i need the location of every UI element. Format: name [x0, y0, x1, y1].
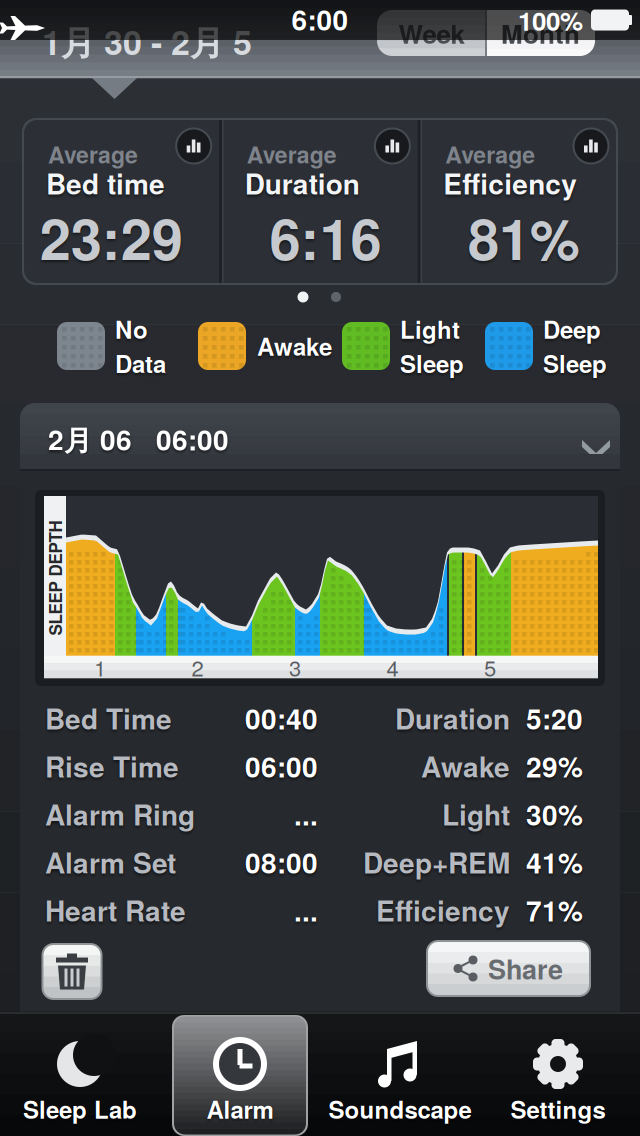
staticText: Awake: [421, 746, 510, 786]
staticText: Rise Time: [45, 746, 179, 786]
staticText: SLEEP DEPTH: [0, 566, 112, 590]
staticText: 08:00: [245, 842, 318, 882]
button[interactable]: Alarm: [165, 1017, 315, 1135]
staticText: Deep+REM: [363, 842, 510, 882]
button[interactable]: Settings: [483, 1017, 633, 1135]
staticText: 5: [484, 651, 496, 683]
staticText: 30%: [526, 794, 583, 834]
staticText: Bed Time: [45, 698, 172, 738]
staticText: 29%: [526, 746, 583, 786]
staticText: 23:29: [40, 197, 183, 277]
staticText: Heart Rate: [45, 890, 186, 930]
staticText: Awake: [257, 329, 332, 363]
staticText: Alarm: [206, 1092, 273, 1126]
staticText: ...: [294, 890, 318, 930]
staticText: 4: [386, 651, 398, 683]
staticText: No Data: [115, 312, 166, 380]
staticText: Duration: [395, 698, 510, 738]
staticText: Average: [48, 137, 138, 170]
staticText: 2: [191, 651, 203, 683]
staticText: 6:16: [269, 197, 381, 277]
button[interactable]: [572, 127, 609, 164]
staticText: 41%: [526, 842, 583, 882]
staticText: ...: [294, 794, 318, 834]
staticText: 100%: [518, 1, 583, 39]
staticText: 3: [289, 651, 301, 683]
staticText: Duration: [245, 163, 360, 203]
staticText: 1月 30 - 2月 5: [42, 17, 252, 65]
staticText: 71%: [526, 890, 583, 930]
button[interactable]: [374, 127, 411, 164]
staticText: Alarm Set: [45, 842, 176, 882]
staticText: Light: [442, 794, 510, 834]
staticText: 1: [94, 651, 106, 683]
staticText: Sleep Lab: [23, 1092, 137, 1126]
staticText: Average: [247, 137, 337, 170]
staticText: Share: [488, 949, 563, 988]
staticText: Month: [501, 14, 580, 52]
staticText: 06:00: [245, 746, 318, 786]
staticText: Average: [445, 137, 535, 170]
staticText: Alarm Ring: [45, 794, 195, 834]
button[interactable]: Share: [426, 940, 591, 997]
staticText: 2月 06 06:00: [48, 419, 229, 459]
button[interactable]: Week: [377, 10, 486, 56]
staticText: Bed time: [46, 163, 165, 203]
button[interactable]: 2月 06 06:00: [20, 403, 620, 470]
staticText: 81%: [468, 197, 580, 277]
button[interactable]: Soundscape: [325, 1017, 475, 1135]
staticText: Deep Sleep: [543, 312, 607, 380]
button[interactable]: [175, 127, 212, 164]
staticText: 6:00: [291, 0, 348, 39]
staticText: Efficiency: [443, 163, 577, 203]
staticText: Week: [398, 14, 464, 52]
staticText: Settings: [510, 1092, 605, 1126]
staticText: 00:40: [245, 698, 318, 738]
staticText: Soundscape: [328, 1092, 471, 1126]
button[interactable]: [41, 943, 102, 1000]
staticText: Efficiency: [376, 890, 510, 930]
button[interactable]: Sleep Lab: [5, 1017, 155, 1135]
staticText: 5:20: [526, 698, 583, 738]
staticText: Light Sleep: [400, 312, 464, 380]
button[interactable]: Month: [486, 10, 595, 56]
